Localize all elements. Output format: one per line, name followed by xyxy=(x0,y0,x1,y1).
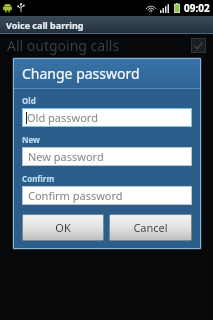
staticText: 09:02 xyxy=(184,1,210,15)
staticText: Old xyxy=(22,95,36,106)
button[interactable]: OK xyxy=(22,214,104,241)
staticText: All outgoing calls xyxy=(7,36,120,55)
staticText: Cancel xyxy=(133,220,168,235)
staticText: New password xyxy=(28,149,104,164)
staticText: Voice call barring xyxy=(6,19,84,31)
button[interactable]: Cancel xyxy=(109,214,192,241)
button[interactable]: Confirm password xyxy=(22,186,192,205)
button[interactable]: All outgoing calls checkbox xyxy=(191,38,206,53)
staticText: Old password xyxy=(27,110,98,125)
button[interactable]: All outgoing calls xyxy=(0,34,213,57)
staticText: Confirm xyxy=(22,173,55,184)
staticText: Confirm password xyxy=(28,188,123,203)
staticText: New xyxy=(22,134,40,145)
staticText: Change password xyxy=(22,64,140,83)
button[interactable]: New password xyxy=(22,147,192,166)
staticText: OK xyxy=(55,220,71,235)
button[interactable]: Old password xyxy=(22,108,192,127)
